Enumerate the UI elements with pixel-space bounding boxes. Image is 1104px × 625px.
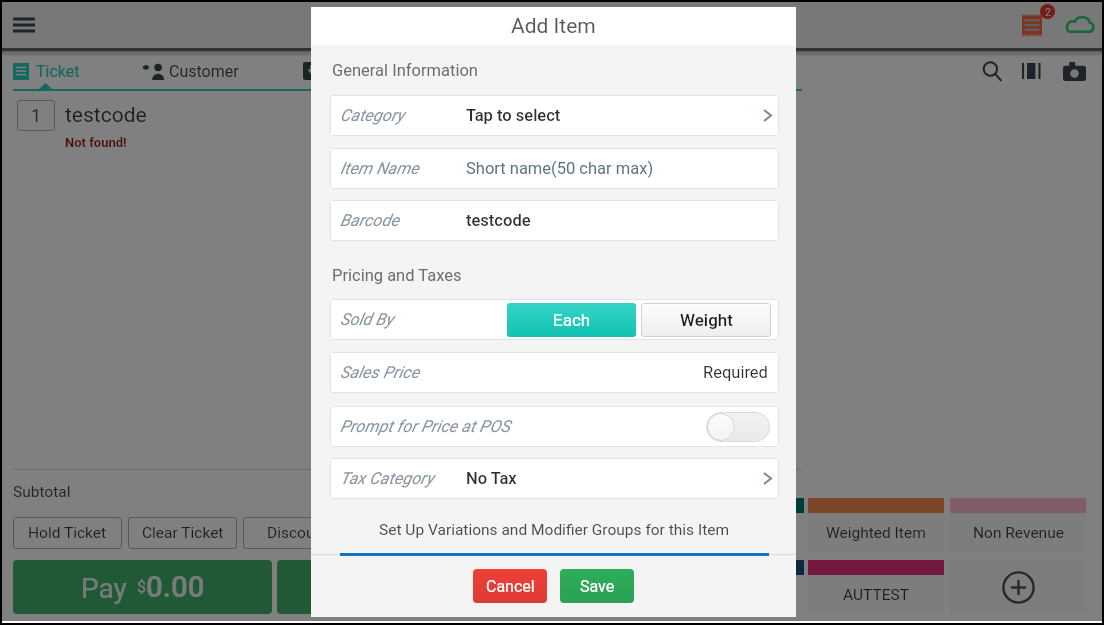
button[interactable]: Save ticket: [293, 51, 413, 91]
button[interactable]: Menu: [6, 7, 42, 43]
staticText: Pricing and Taxes: [332, 266, 462, 285]
staticText: Sold By: [340, 310, 394, 329]
button[interactable]: Pay: [13, 560, 272, 614]
button[interactable]: Weight: [641, 303, 771, 337]
button[interactable]: Discount: [243, 517, 352, 549]
button[interactable]: Scan barcode: [1012, 51, 1052, 91]
button[interactable]: Add Tip: [358, 517, 467, 549]
staticText: Cancel: [486, 577, 535, 596]
staticText: Save: [580, 577, 615, 596]
staticText: Each: [553, 310, 591, 330]
button[interactable]: Barcode: [330, 200, 779, 241]
staticText: Subtotal: [13, 483, 71, 501]
staticText: Clear Ticket: [142, 524, 224, 542]
staticText: Required: [703, 363, 768, 382]
staticText: $: [137, 577, 146, 596]
staticText: Non Revenue: [973, 524, 1064, 542]
staticText: Not found!: [65, 135, 127, 150]
button[interactable]: Cash: [277, 560, 419, 614]
button[interactable]: Tax Category: [330, 458, 779, 499]
button[interactable]: Prompt for Price at POS toggle: [706, 412, 770, 442]
button[interactable]: Save: [560, 569, 634, 603]
button[interactable]: Cancel: [473, 569, 547, 603]
button[interactable]: Weighted Item: [808, 498, 944, 552]
button[interactable]: Each: [507, 303, 636, 337]
staticText: Add Item: [511, 14, 596, 39]
staticText: 2: [1045, 6, 1051, 18]
staticText: Add Tip: [386, 524, 439, 542]
staticText: testcode: [466, 211, 531, 230]
staticText: Weight: [680, 310, 733, 330]
staticText: Set Up Variations and Modifier Groups fo…: [379, 521, 730, 539]
staticText: Pay: [81, 572, 127, 605]
button[interactable]: Add category: [950, 560, 1086, 614]
button[interactable]: Prompt for Price at POS: [330, 406, 779, 447]
staticText: Prompt for Price at POS: [340, 417, 510, 436]
staticText: Discount: [267, 524, 329, 542]
staticText: Ticket: [36, 62, 80, 81]
button[interactable]: Hold Ticket: [13, 517, 122, 549]
staticText: 1: [31, 105, 42, 126]
staticText: General Information: [332, 61, 478, 80]
staticText: Item Name: [340, 159, 419, 178]
staticText: Category: [340, 106, 405, 125]
staticText: Hold Ticket: [28, 524, 107, 542]
button[interactable]: 1: [17, 100, 55, 131]
staticText: AUTTEST: [843, 586, 909, 604]
staticText: Tap to select: [466, 106, 561, 125]
staticText: Sales Price: [340, 363, 420, 382]
button[interactable]: Search: [972, 51, 1012, 91]
button[interactable]: Non Revenue: [950, 498, 1086, 552]
button[interactable]: Set Up Variations and Modifier Groups fo…: [330, 513, 779, 547]
button[interactable]: Receipts: [1021, 5, 1061, 45]
button[interactable]: Category: [330, 95, 779, 136]
staticText: Customer: [169, 62, 239, 81]
staticText: Tax Category: [340, 469, 434, 488]
staticText: Barcode: [340, 211, 399, 230]
button[interactable]: Ticket: [4, 51, 124, 91]
button[interactable]: Sales Price: [330, 352, 779, 393]
button[interactable]: Cloud sync: [1060, 4, 1100, 44]
staticText: 0.00: [146, 570, 205, 605]
staticText: Short name(50 char max): [466, 159, 654, 178]
staticText: testcode: [65, 103, 147, 128]
staticText: No Tax: [466, 469, 517, 488]
button[interactable]: AUTTEST: [808, 560, 944, 614]
button[interactable]: Clear Ticket: [128, 517, 237, 549]
button[interactable]: Customer: [134, 51, 264, 91]
button[interactable]: Item Name: [330, 148, 779, 189]
button[interactable]: Camera: [1054, 51, 1094, 91]
staticText: Weighted Item: [826, 524, 926, 542]
